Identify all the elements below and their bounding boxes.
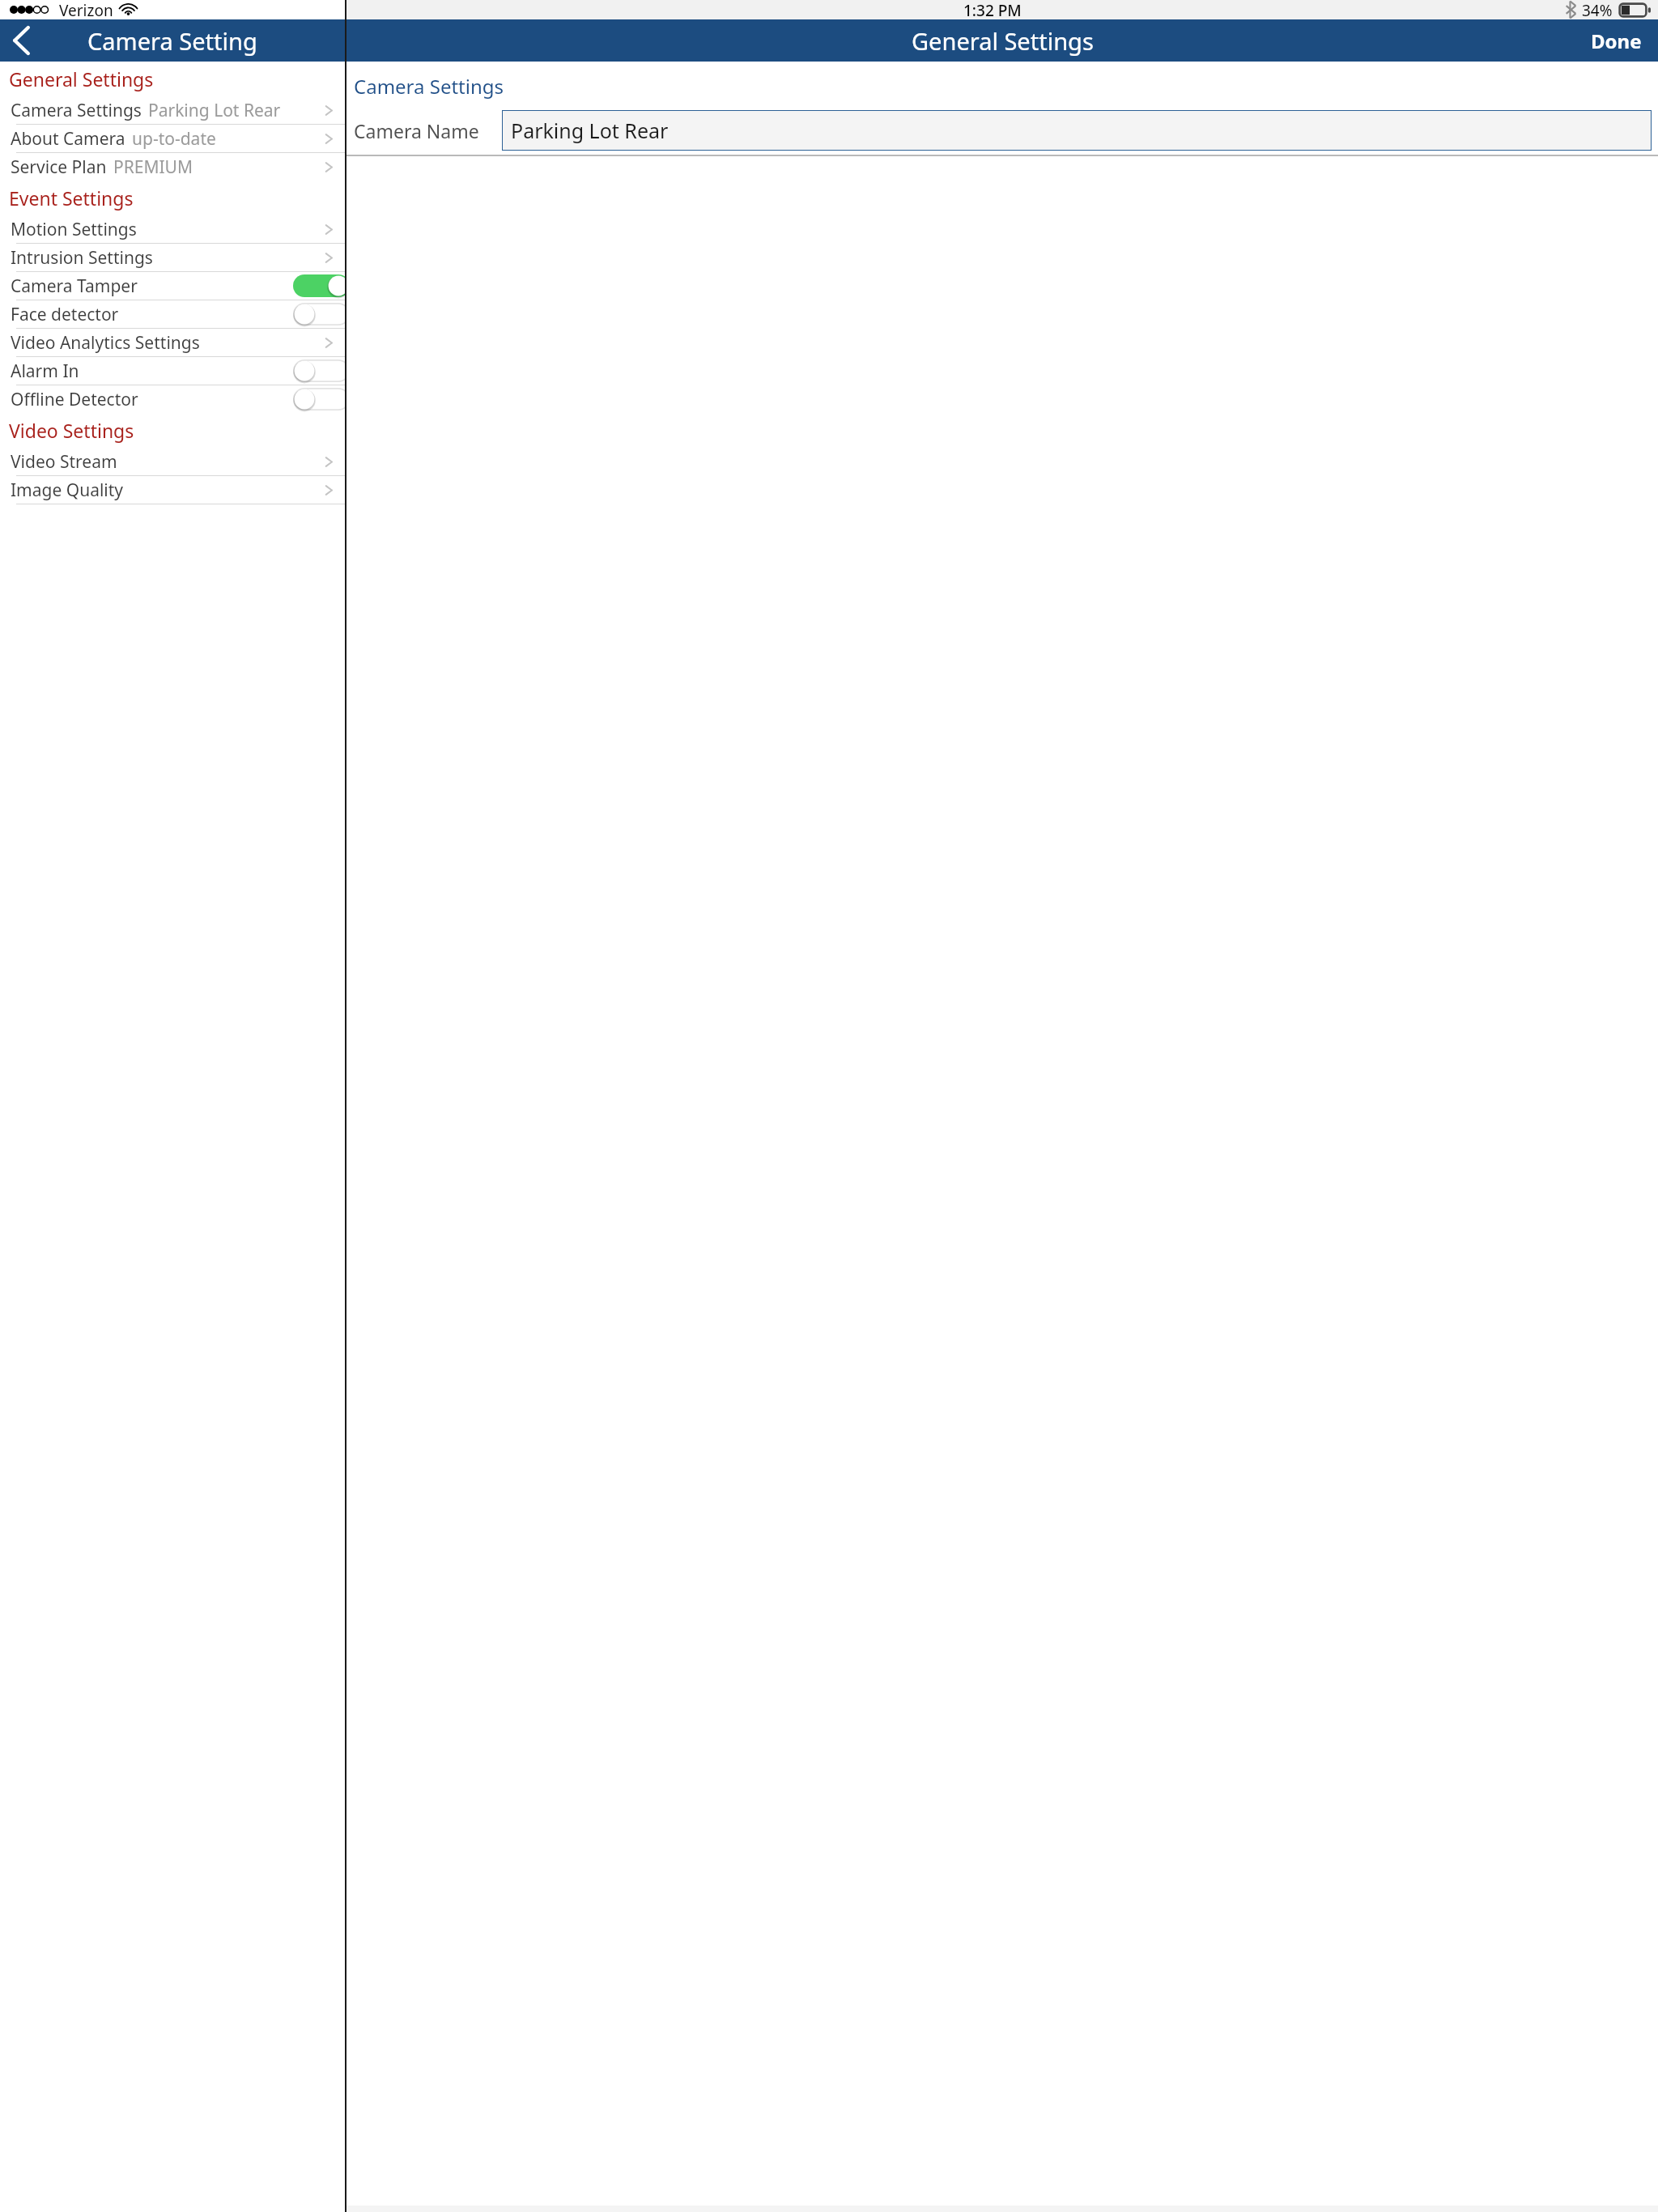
- button[interactable]: Camera Settings: [0, 96, 345, 124]
- staticText: Alarm In: [11, 359, 79, 383]
- button[interactable]: Camera Tamper: [0, 272, 345, 300]
- staticText: Service Plan: [11, 155, 107, 179]
- staticText: 1:32 PM: [963, 0, 1022, 19]
- staticText: Camera Setting: [87, 25, 257, 57]
- button[interactable]: Offline Detector: [0, 385, 345, 413]
- staticText: 34%: [1582, 0, 1613, 19]
- staticText: Intrusion Settings: [11, 246, 153, 270]
- button[interactable]: Alarm In: [0, 357, 345, 385]
- staticText: General Settings: [9, 66, 154, 91]
- staticText: Parking Lot Rear: [148, 99, 281, 122]
- staticText: Video Stream: [11, 450, 117, 474]
- staticText: up-to-date: [132, 127, 216, 151]
- staticText: PREMIUM: [113, 155, 193, 179]
- button[interactable]: Video Analytics Settings: [0, 329, 345, 356]
- staticText: Verizon: [59, 0, 113, 19]
- staticText: About Camera: [11, 127, 125, 151]
- staticText: Camera Tamper: [11, 274, 138, 298]
- staticText: Camera Settings: [11, 99, 142, 122]
- staticText: Event Settings: [9, 185, 134, 211]
- button[interactable]: Parking Lot Rear: [502, 110, 1652, 151]
- button[interactable]: About Camera: [0, 125, 345, 152]
- button[interactable]: Video Stream: [0, 448, 345, 475]
- staticText: Camera Settings: [354, 73, 504, 100]
- button[interactable]: Face detector: [0, 300, 345, 328]
- button[interactable]: Intrusion Settings: [0, 244, 345, 271]
- staticText: Face detector: [11, 303, 119, 326]
- staticText: Video Analytics Settings: [11, 331, 200, 355]
- staticText: Camera Name: [354, 118, 479, 143]
- staticText: Motion Settings: [11, 218, 137, 241]
- staticText: Image Quality: [11, 479, 124, 502]
- button[interactable]: Image Quality: [0, 476, 345, 504]
- button[interactable]: Motion Settings: [0, 215, 345, 243]
- button[interactable]: Done: [1575, 19, 1658, 62]
- staticText: Offline Detector: [11, 388, 138, 411]
- staticText: General Settings: [912, 25, 1094, 57]
- button[interactable]: Back: [6, 19, 37, 62]
- staticText: Done: [1591, 28, 1642, 54]
- staticText: Video Settings: [9, 418, 134, 443]
- staticText: Parking Lot Rear: [511, 117, 669, 144]
- button[interactable]: Service Plan: [0, 153, 345, 181]
